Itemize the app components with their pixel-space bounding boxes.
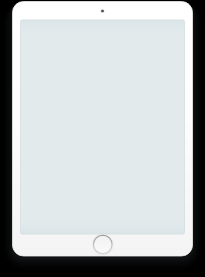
button[interactable]: Tablet device mockup	[0, 0, 205, 277]
